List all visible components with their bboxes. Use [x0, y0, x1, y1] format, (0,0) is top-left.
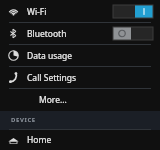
staticText: Call Settings — [27, 72, 77, 84]
staticText: DEVICE — [11, 116, 36, 124]
button[interactable]: Data usage — [0, 45, 160, 66]
staticText: Data usage — [27, 50, 73, 62]
button[interactable]: Bluetooth — [0, 23, 160, 44]
staticText: Bluetooth — [27, 28, 67, 40]
button[interactable]: Wi-Fi switch — [113, 5, 153, 18]
button[interactable]: Wi-Fi — [0, 1, 160, 22]
staticText: More... — [39, 94, 67, 106]
button[interactable]: Call Settings — [0, 67, 160, 88]
staticText: Wi-Fi — [27, 6, 47, 18]
button[interactable]: More... — [0, 89, 160, 111]
staticText: Home — [27, 134, 52, 146]
button[interactable]: Bluetooth switch — [113, 27, 153, 40]
button[interactable]: Home — [0, 130, 160, 150]
